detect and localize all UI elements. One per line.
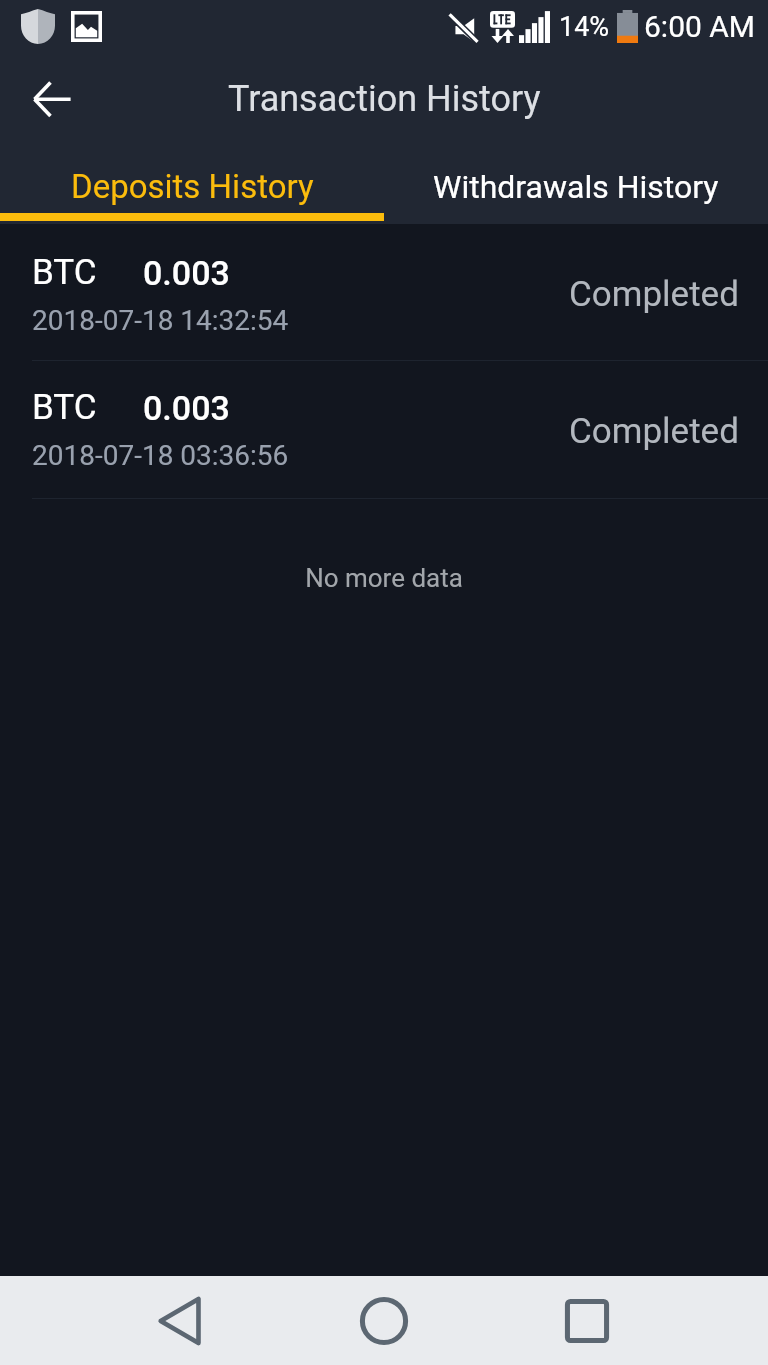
button[interactable]: Recents xyxy=(543,1277,631,1365)
button[interactable]: BTC xyxy=(0,361,768,498)
staticText: 0.003 xyxy=(143,388,230,428)
staticText: BTC xyxy=(32,252,97,293)
staticText: BTC xyxy=(32,387,97,428)
button[interactable]: Back xyxy=(136,1277,224,1365)
button[interactable]: Withdrawals History xyxy=(384,140,768,213)
button[interactable]: Back xyxy=(0,52,104,140)
button[interactable]: BTC xyxy=(0,224,768,360)
staticText: 2018-07-18 14:32:54 xyxy=(32,304,289,337)
staticText: Transaction History xyxy=(228,78,541,120)
button[interactable]: Home xyxy=(340,1277,428,1365)
staticText: 6:00 AM xyxy=(644,9,756,44)
staticText: 2018-07-18 03:36:56 xyxy=(32,439,289,472)
staticText: 0.003 xyxy=(143,253,230,293)
button[interactable]: Deposits History xyxy=(0,140,384,213)
staticText: 14% xyxy=(559,11,610,43)
staticText: Completed xyxy=(569,411,739,452)
staticText: Withdrawals History xyxy=(433,168,719,206)
staticText: Completed xyxy=(569,274,739,315)
staticText: No more data xyxy=(0,563,768,593)
staticText: Deposits History xyxy=(71,167,314,206)
